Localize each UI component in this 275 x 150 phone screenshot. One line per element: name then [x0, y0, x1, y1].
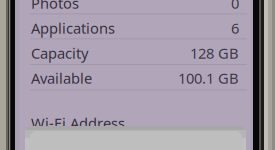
- staticText: Wi-Fi Address: [31, 113, 125, 133]
- staticText: 6: [231, 18, 239, 38]
- staticText: 128 GB: [190, 43, 239, 63]
- button[interactable]: Capacity: [15, 0, 223, 18]
- button[interactable]: Available: [15, 0, 223, 18]
- button[interactable]: Wi-Fi Address: [15, 0, 223, 18]
- button[interactable]: Photos: [15, 0, 223, 18]
- staticText: Available: [31, 68, 92, 88]
- staticText: Capacity: [31, 43, 88, 63]
- staticText: Photos: [31, 0, 79, 13]
- staticText: 0: [231, 0, 239, 13]
- staticText: Applications: [31, 18, 115, 38]
- staticText: 100.1 GB: [178, 68, 239, 88]
- button[interactable]: Applications: [15, 0, 223, 18]
